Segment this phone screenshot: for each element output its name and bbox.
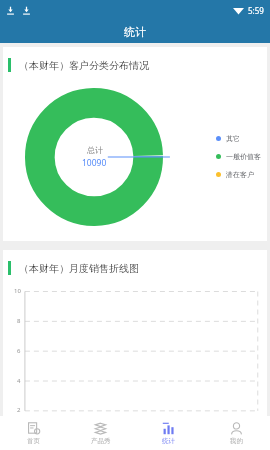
button[interactable]: 我的 xyxy=(202,416,270,450)
staticText: （本财年）月度销售折线图 xyxy=(19,262,139,275)
staticText: 4 xyxy=(17,377,21,385)
button[interactable]: 统计 xyxy=(134,416,202,450)
staticText: 其它 xyxy=(226,134,240,143)
staticText: 总计 xyxy=(87,145,103,155)
button[interactable]: （本财年）月度销售折线图 xyxy=(3,250,267,416)
staticText: 潜在客户 xyxy=(226,170,254,179)
staticText: 10 xyxy=(14,287,21,295)
button[interactable]: （本财年）客户分类分布情况 xyxy=(3,47,267,241)
staticText: 我的 xyxy=(230,437,243,445)
staticText: 5:59 xyxy=(248,5,264,16)
staticText: 8 xyxy=(17,317,21,325)
button[interactable]: 首页 xyxy=(0,416,67,450)
staticText: 一般价值客 xyxy=(226,152,261,161)
staticText: 2 xyxy=(17,406,21,414)
staticText: 6 xyxy=(17,347,21,355)
staticText: 产品秀 xyxy=(91,437,111,445)
staticText: 10090 xyxy=(82,157,107,169)
staticText: （本财年）客户分类分布情况 xyxy=(19,59,149,72)
button[interactable]: 产品秀 xyxy=(67,416,134,450)
staticText: 首页 xyxy=(27,437,40,445)
staticText: 统计 xyxy=(124,25,146,39)
staticText: 统计 xyxy=(162,437,175,445)
